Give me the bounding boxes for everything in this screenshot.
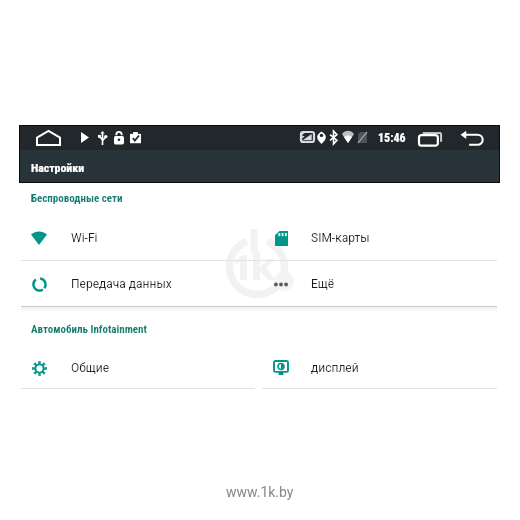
staticText: SIM-карты — [311, 231, 370, 245]
staticText: дисплей — [311, 361, 359, 375]
button[interactable]: Ещё — [263, 262, 493, 306]
button[interactable]: Home — [34, 127, 62, 149]
staticText: Автомобиль Infotainment — [31, 323, 147, 336]
staticText: Беспроводные сети — [31, 192, 123, 205]
staticText: Wi-Fi — [71, 231, 98, 245]
button[interactable]: Wi-Fi — [21, 215, 251, 260]
staticText: Настройки — [31, 161, 85, 175]
button[interactable]: Общие — [21, 346, 251, 390]
button[interactable]: Передача данных — [21, 262, 251, 306]
button[interactable]: Back — [458, 128, 486, 148]
staticText: Передача данных — [71, 277, 172, 291]
button[interactable]: Recent apps — [416, 128, 444, 148]
staticText: Ещё — [311, 277, 335, 291]
button[interactable]: дисплей — [263, 346, 493, 390]
staticText: www.1k.by — [226, 484, 294, 500]
staticText: 15:46 — [378, 131, 406, 145]
button[interactable]: SIM-карты — [263, 215, 493, 260]
staticText: Общие — [71, 361, 110, 375]
